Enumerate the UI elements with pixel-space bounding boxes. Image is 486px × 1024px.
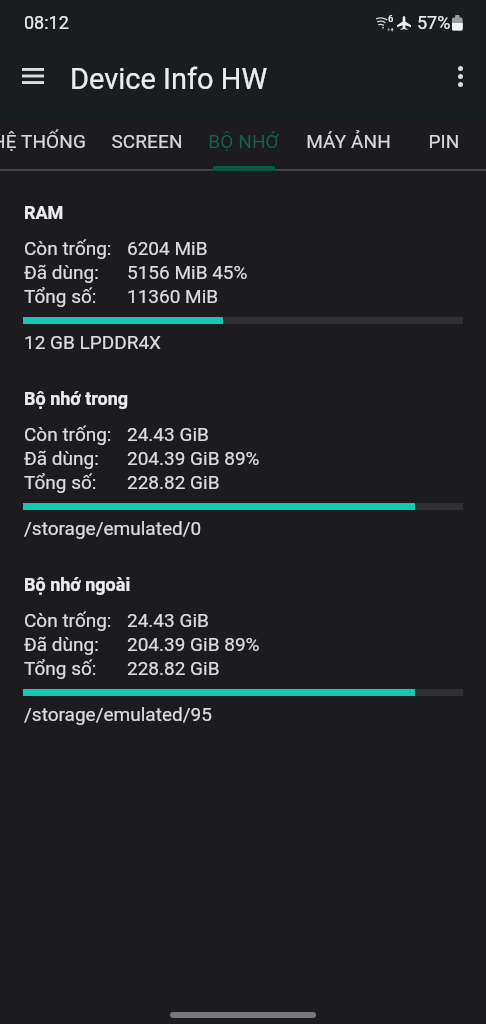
staticText: 228.82 GiB: [127, 657, 220, 679]
staticText: 08:12: [24, 12, 69, 33]
staticText: 5156 MiB 45%: [127, 261, 248, 283]
button[interactable]: BỘ NHỚ: [195, 120, 291, 172]
button[interactable]: SCREEN: [98, 120, 195, 172]
staticText: Đã dùng:: [24, 261, 99, 283]
staticText: 11360 MiB: [127, 285, 219, 307]
button[interactable]: More options: [438, 54, 482, 98]
staticText: Đã dùng:: [24, 447, 99, 469]
staticText: 57%: [417, 12, 451, 33]
staticText: Tổng số:: [24, 285, 97, 307]
staticText: 12 GB LPDDR4X: [24, 331, 162, 353]
staticText: 204.39 GiB 89%: [127, 447, 260, 469]
staticText: Bộ nhớ trong: [24, 388, 129, 409]
staticText: Đã dùng:: [24, 633, 99, 655]
staticText: Còn trống:: [24, 237, 112, 259]
button[interactable]: MÁY ẢNH: [294, 120, 403, 172]
staticText: Bộ nhớ ngoài: [24, 574, 131, 595]
button[interactable]: Navigation menu: [11, 54, 55, 98]
staticText: RAM: [24, 202, 64, 223]
staticText: 6204 MiB: [127, 237, 208, 259]
staticText: PIN: [428, 130, 460, 152]
staticText: 24.43 GiB: [127, 609, 209, 631]
staticText: Tổng số:: [24, 657, 97, 679]
staticText: SCREEN: [111, 130, 183, 152]
staticText: BỘ NHỚ: [208, 130, 279, 152]
staticText: MÁY ẢNH: [306, 130, 391, 152]
staticText: HỆ THỐNG: [0, 130, 86, 152]
staticText: 6: [388, 13, 394, 24]
staticText: 204.39 GiB 89%: [127, 633, 260, 655]
staticText: 228.82 GiB: [127, 471, 220, 493]
staticText: /storage/emulated/95: [24, 703, 212, 725]
staticText: Còn trống:: [24, 423, 112, 445]
staticText: /storage/emulated/0: [24, 517, 202, 539]
staticText: 24.43 GiB: [127, 423, 209, 445]
button[interactable]: HỆ THỐNG: [0, 120, 99, 172]
staticText: Device Info HW: [70, 62, 268, 96]
staticText: Còn trống:: [24, 609, 112, 631]
staticText: Tổng số:: [24, 471, 97, 493]
button[interactable]: PIN: [414, 120, 473, 172]
